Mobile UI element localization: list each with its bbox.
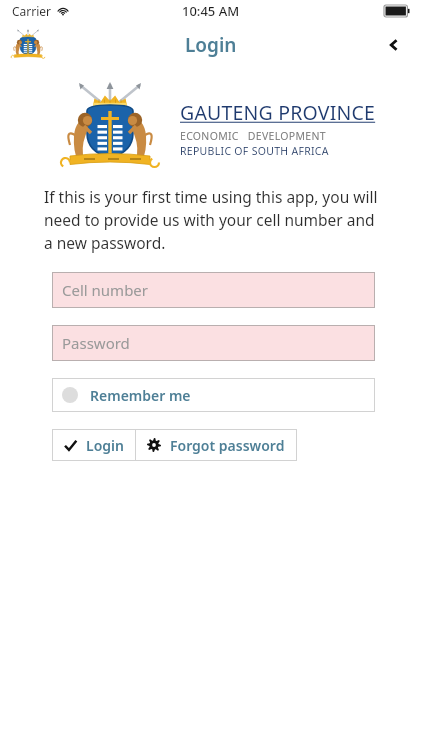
button[interactable]: Gauteng Province emblem bbox=[6, 25, 50, 65]
button[interactable]: Remember me bbox=[52, 378, 375, 412]
staticText: Login bbox=[185, 32, 237, 58]
button[interactable]: Password bbox=[52, 325, 375, 361]
staticText: REPUBLIC OF SOUTH AFRICA bbox=[180, 144, 329, 158]
staticText: Password bbox=[62, 333, 130, 353]
staticText: ECONOMIC DEVELOPMENT bbox=[180, 129, 326, 143]
staticText: Remember me bbox=[90, 386, 191, 405]
staticText: 10:45 AM bbox=[182, 2, 240, 20]
button[interactable]: Login bbox=[52, 429, 136, 461]
button[interactable]: Cell number bbox=[52, 272, 375, 308]
staticText: Forgot password bbox=[170, 436, 285, 455]
staticText: Cell number bbox=[62, 280, 149, 300]
staticText: GAUTENG PROVINCE bbox=[180, 99, 376, 126]
staticText: Carrier bbox=[12, 3, 52, 19]
button[interactable]: Forgot password bbox=[135, 429, 297, 461]
button[interactable]: Back bbox=[374, 25, 414, 65]
staticText: Login bbox=[86, 436, 124, 455]
staticText: If this is your first time using this ap… bbox=[44, 186, 380, 254]
